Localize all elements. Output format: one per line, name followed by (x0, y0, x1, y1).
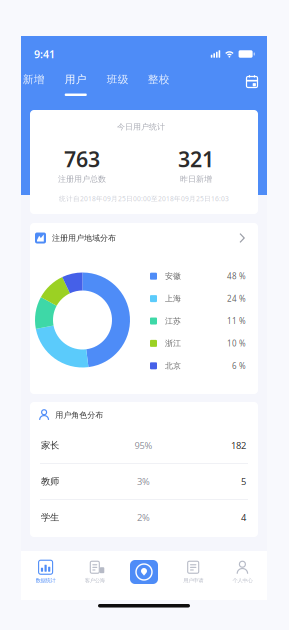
staticText: 数据统计 (36, 577, 56, 584)
staticText: 统计自2018年09月25日00:00至2018年09月25日16:03 (59, 194, 229, 203)
staticText: 用户申请 (183, 577, 203, 584)
staticText: 整校 (148, 73, 170, 86)
staticText: 2% (137, 511, 150, 524)
button[interactable]: 注册用户地域分布 (30, 223, 258, 253)
staticText: 个人中心 (232, 577, 252, 584)
button[interactable]: 新增 (13, 68, 54, 96)
staticText: 10 % (227, 338, 246, 349)
staticText: 321 (178, 145, 214, 173)
staticText: 安徽 (165, 271, 181, 281)
button[interactable]: 客户公海 (70, 553, 119, 591)
button[interactable]: 定位 (119, 553, 169, 591)
staticText: 48 % (227, 271, 246, 281)
staticText: 家长 (41, 440, 59, 451)
staticText: 上海 (165, 294, 181, 303)
staticText: 注册用户总数 (58, 174, 106, 184)
staticText: 班级 (107, 73, 129, 86)
staticText: 9:41 (34, 47, 55, 61)
staticText: 今日用户统计 (117, 122, 165, 132)
staticText: 6 % (232, 360, 246, 371)
staticText: 江苏 (165, 316, 181, 326)
button[interactable]: 整校 (138, 68, 179, 96)
staticText: 北京 (165, 361, 181, 371)
button[interactable]: 数据统计 (21, 553, 70, 591)
staticText: 学生 (41, 512, 59, 523)
button[interactable]: 班级 (97, 68, 138, 96)
staticText: 95% (134, 439, 152, 452)
staticText: 浙江 (165, 338, 181, 348)
staticText: 新增 (23, 73, 45, 86)
staticText: 3% (137, 475, 150, 488)
button[interactable]: 日历 (240, 67, 264, 93)
staticText: 4 (241, 511, 246, 524)
button[interactable]: 个人中心 (218, 553, 267, 591)
staticText: 11 % (227, 316, 246, 326)
staticText: 用户 (65, 73, 87, 86)
staticText: 182 (231, 439, 246, 452)
staticText: 24 % (227, 293, 246, 304)
button[interactable]: 用户申请 (169, 553, 218, 591)
staticText: 5 (241, 475, 246, 488)
staticText: 昨日新增 (180, 174, 212, 184)
staticText: 763 (64, 145, 100, 173)
staticText: 用户角色分布 (55, 410, 103, 420)
staticText: 注册用户地域分布 (52, 233, 116, 243)
staticText: 客户公海 (85, 577, 105, 584)
button[interactable]: 用户 (55, 68, 96, 96)
staticText: 教师 (41, 476, 59, 487)
